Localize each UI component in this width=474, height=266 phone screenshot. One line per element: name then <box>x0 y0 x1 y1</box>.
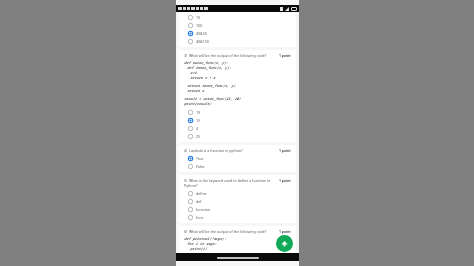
staticText: def inner_func(x, y): <box>187 65 232 70</box>
staticText: define <box>196 191 207 196</box>
button[interactable]: 19 <box>188 110 291 115</box>
staticText: True <box>196 156 204 161</box>
staticText: 25 <box>196 134 201 139</box>
staticText: func <box>196 215 204 220</box>
staticText: result = outer_func(15, 10) <box>184 96 241 101</box>
staticText: 1 point <box>279 148 291 153</box>
button[interactable]: 15 <box>188 118 291 123</box>
staticText: print(result) <box>184 101 212 106</box>
staticText: def <box>196 199 202 204</box>
staticText: 40&150 <box>196 39 209 44</box>
staticText: return x <box>187 88 204 93</box>
staticText: 4) Lambda is a function in python? <box>184 148 277 153</box>
staticText: 40&50 <box>196 31 207 36</box>
button[interactable]: 100 <box>188 23 290 28</box>
staticText: 5) What is the keyword used to define a … <box>184 178 277 188</box>
staticText: 100 <box>196 23 203 28</box>
staticText: return inner_func(x, y) <box>187 83 236 88</box>
staticText: 6) What will be the output of the follow… <box>184 229 277 234</box>
button[interactable]: Scroll up <box>276 235 293 252</box>
button[interactable]: True <box>188 156 291 161</box>
button[interactable]: False <box>188 164 291 169</box>
button[interactable]: 10 <box>188 15 290 20</box>
staticText: 19 <box>196 110 201 115</box>
button[interactable]: 40&50 <box>188 31 290 36</box>
staticText: for i in args: <box>187 241 217 246</box>
button[interactable]: def <box>188 199 291 204</box>
button[interactable]: 4 <box>188 126 291 131</box>
staticText: 10 <box>196 15 201 20</box>
staticText: def outer_func(x, y): <box>184 60 229 65</box>
staticText: return z + x <box>190 75 216 80</box>
staticText: def printnul(*args): <box>184 236 226 241</box>
button[interactable]: 40&150 <box>188 39 290 44</box>
button[interactable]: 25 <box>188 134 291 139</box>
button[interactable]: func <box>188 215 291 220</box>
staticText: 3) What will be the output of the follow… <box>184 53 277 58</box>
staticText: 1 point <box>279 178 291 183</box>
staticText: False <box>196 164 205 169</box>
staticText: 1 point <box>279 229 291 234</box>
staticText: z=4 <box>190 70 197 75</box>
button[interactable]: function <box>188 207 291 212</box>
staticText: 1 point <box>279 53 291 58</box>
staticText: 15 <box>196 118 201 123</box>
staticText: print(i) <box>190 246 207 251</box>
button[interactable]: define <box>188 191 291 196</box>
staticText: 4 <box>196 126 199 131</box>
staticText: function <box>196 207 211 212</box>
